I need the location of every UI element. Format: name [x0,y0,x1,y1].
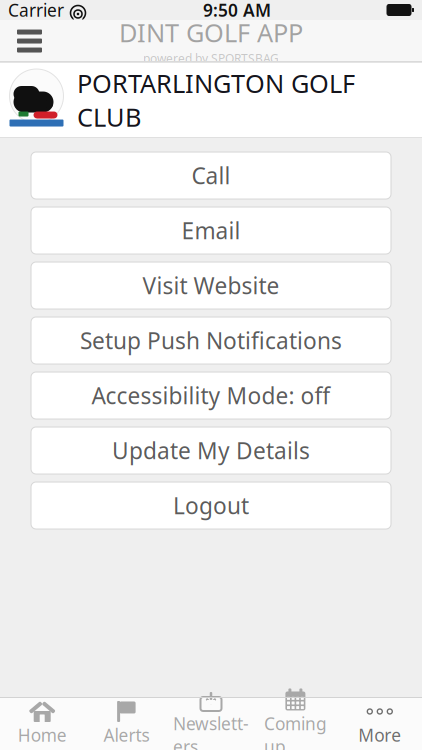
button[interactable]: Logout [31,482,391,529]
staticText: Email [181,215,240,245]
staticText: Setup Push Notifications [80,325,342,355]
button[interactable]: Update My Details [31,427,391,474]
staticText: Call [191,160,230,190]
staticText: Carrier [8,0,64,21]
button[interactable]: Call [31,152,391,199]
button[interactable]: Home [0,697,84,750]
staticText: powered by SPORTSBAG [143,50,279,66]
staticText: Home [18,723,67,746]
staticText: PORTARLINGTON GOLF CLUB [77,66,355,134]
staticText: DINT GOLF APP [119,16,303,49]
button[interactable]: Accessibility Mode: off [31,372,391,419]
staticText: Logout [173,490,249,520]
staticText: Newsletters [173,712,249,750]
button[interactable]: Coming up [253,697,338,750]
button[interactable]: Alerts [84,697,169,750]
staticText: Coming up [264,712,327,750]
button[interactable]: Setup Push Notifications [31,317,391,364]
button[interactable]: Visit Website [31,262,391,309]
button[interactable]: Menu [9,23,50,58]
staticText: Accessibility Mode: off [91,380,330,410]
staticText: More [358,723,401,746]
button[interactable]: Newsletters [169,697,253,750]
staticText: Visit Website [142,270,279,300]
staticText: 9:50 AM [203,0,271,21]
button[interactable]: More [338,697,422,750]
staticText: Alerts [104,723,150,746]
button[interactable]: Email [31,207,391,254]
staticText: Update My Details [112,435,310,465]
